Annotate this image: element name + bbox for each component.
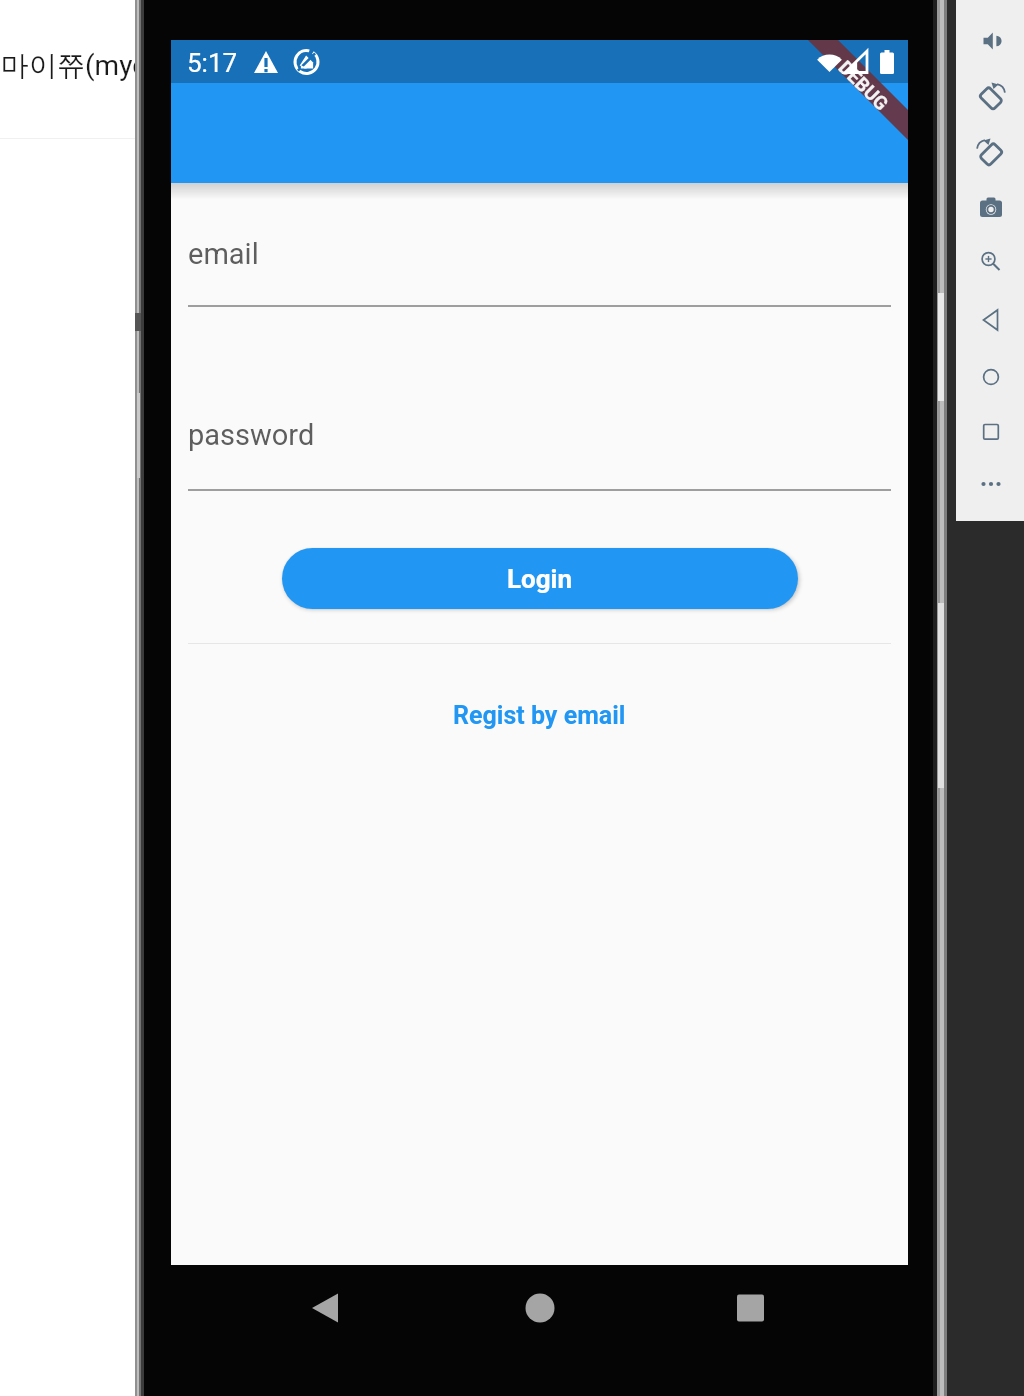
staticText: 마이쮸(myc (1, 48, 138, 83)
staticText: DEBUG (834, 56, 893, 115)
button[interactable]: Login (282, 548, 798, 609)
staticText: email (188, 237, 259, 271)
staticText: password (188, 418, 315, 452)
staticText: Regist by email (453, 701, 626, 730)
staticText: 5:17 (187, 48, 238, 78)
staticText: Login (507, 564, 573, 594)
button[interactable]: Regist by email (171, 701, 908, 730)
